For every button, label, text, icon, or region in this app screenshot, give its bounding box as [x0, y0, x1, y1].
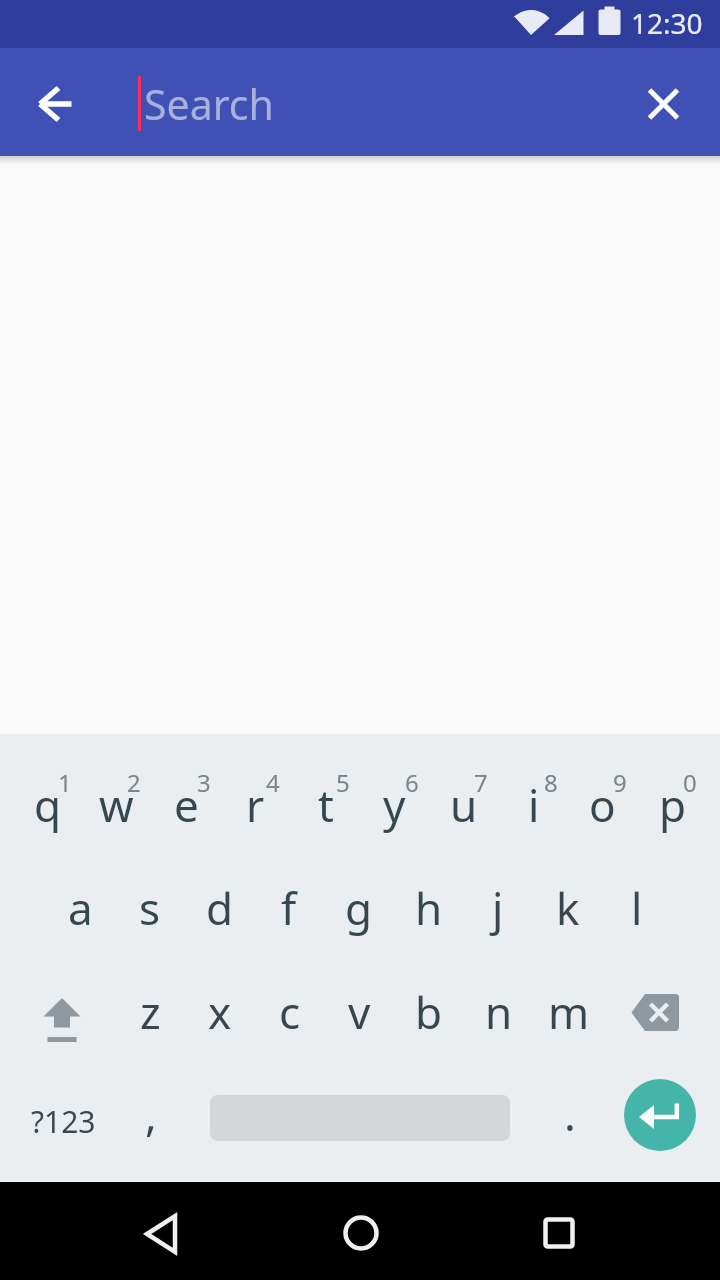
button[interactable]: y: [360, 770, 429, 840]
button[interactable]: g: [324, 873, 393, 943]
staticText: z: [140, 982, 161, 1042]
button[interactable]: v: [325, 977, 394, 1047]
button[interactable]: w: [82, 770, 151, 840]
button[interactable]: k: [533, 873, 602, 943]
staticText: i: [528, 775, 540, 835]
button[interactable]: [609, 979, 707, 1049]
staticText: h: [415, 878, 443, 938]
staticText: c: [279, 982, 301, 1042]
staticText: 2: [127, 766, 141, 796]
staticText: q: [34, 775, 62, 835]
button[interactable]: e: [152, 770, 221, 840]
button[interactable]: l: [602, 873, 671, 943]
staticText: ,: [145, 1084, 157, 1144]
staticText: r: [246, 775, 265, 835]
button[interactable]: i: [499, 770, 568, 840]
button[interactable]: q: [13, 770, 82, 840]
staticText: b: [415, 982, 443, 1042]
button[interactable]: Search: [144, 72, 720, 136]
staticText: l: [631, 878, 643, 938]
staticText: Search: [144, 76, 274, 132]
staticText: s: [139, 878, 161, 938]
button[interactable]: n: [464, 977, 533, 1047]
button[interactable]: d: [185, 873, 254, 943]
button[interactable]: [311, 1184, 411, 1278]
button[interactable]: ,: [116, 1079, 185, 1149]
button[interactable]: f: [254, 873, 323, 943]
staticText: u: [450, 775, 478, 835]
staticText: 4: [266, 766, 280, 796]
staticText: 9: [613, 766, 627, 796]
button[interactable]: c: [255, 977, 324, 1047]
button[interactable]: [511, 1184, 611, 1278]
button[interactable]: r: [221, 770, 290, 840]
staticText: d: [206, 878, 234, 938]
staticText: e: [174, 775, 199, 835]
staticText: k: [556, 878, 580, 938]
staticText: o: [589, 775, 616, 835]
staticText: 0: [683, 766, 697, 796]
button[interactable]: [620, 58, 708, 146]
button[interactable]: j: [463, 873, 532, 943]
staticText: a: [68, 878, 93, 938]
staticText: .: [564, 1084, 576, 1144]
button[interactable]: ?123: [13, 1086, 113, 1156]
button[interactable]: .: [535, 1079, 604, 1149]
staticText: p: [659, 775, 687, 835]
staticText: 8: [544, 766, 558, 796]
button[interactable]: s: [115, 873, 184, 943]
staticText: 12:30: [631, 4, 703, 36]
button[interactable]: p: [638, 770, 707, 840]
button[interactable]: [624, 1079, 696, 1151]
staticText: n: [485, 982, 513, 1042]
staticText: 1: [58, 766, 72, 796]
button[interactable]: x: [185, 977, 254, 1047]
button[interactable]: [12, 58, 100, 146]
button[interactable]: b: [394, 977, 463, 1047]
staticText: w: [99, 775, 134, 835]
staticText: 3: [197, 766, 211, 796]
staticText: x: [208, 982, 232, 1042]
staticText: m: [548, 982, 590, 1042]
button[interactable]: m: [534, 977, 603, 1047]
staticText: ?123: [31, 1101, 96, 1142]
button[interactable]: [13, 979, 111, 1049]
button[interactable]: z: [116, 977, 185, 1047]
staticText: 7: [474, 766, 488, 796]
staticText: 6: [405, 766, 419, 796]
button[interactable]: u: [429, 770, 498, 840]
staticText: y: [383, 775, 406, 835]
button[interactable]: a: [46, 873, 115, 943]
button[interactable]: t: [291, 770, 360, 840]
staticText: v: [348, 982, 371, 1042]
staticText: g: [345, 878, 373, 938]
staticText: f: [281, 878, 297, 938]
button[interactable]: h: [394, 873, 463, 943]
button[interactable]: o: [568, 770, 637, 840]
staticText: t: [318, 775, 334, 835]
button[interactable]: [111, 1184, 211, 1278]
staticText: 5: [336, 766, 350, 796]
staticText: j: [492, 878, 504, 938]
